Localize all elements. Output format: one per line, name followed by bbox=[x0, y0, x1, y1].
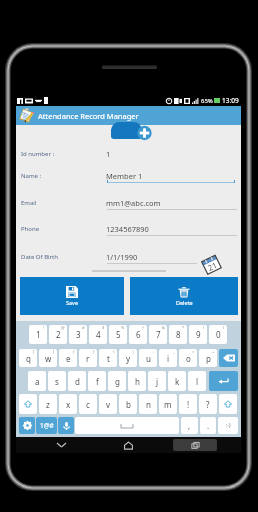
button[interactable]: Save bbox=[20, 277, 124, 315]
button[interactable]: w bbox=[39, 349, 57, 367]
button[interactable]: Backspace bbox=[219, 349, 238, 367]
staticText: . bbox=[207, 420, 210, 431]
button[interactable]: d bbox=[68, 371, 86, 391]
staticText: g bbox=[115, 376, 120, 387]
button[interactable]: q bbox=[19, 349, 37, 367]
button[interactable]: m bbox=[159, 394, 177, 414]
staticText: Name : bbox=[21, 172, 42, 180]
button[interactable]: 3 bbox=[69, 325, 87, 344]
staticText: 3 bbox=[76, 329, 81, 340]
staticText: q bbox=[26, 353, 31, 364]
staticText: z bbox=[46, 399, 50, 410]
staticText: r bbox=[86, 353, 90, 364]
button[interactable]: 6 bbox=[129, 325, 147, 344]
staticText: 8 bbox=[176, 329, 181, 340]
button[interactable]: , bbox=[181, 417, 198, 434]
staticText: Member 1 bbox=[106, 171, 143, 181]
staticText: y bbox=[126, 353, 131, 364]
staticText: m bbox=[164, 399, 172, 410]
button[interactable]: s bbox=[48, 371, 66, 391]
button[interactable]: Home bbox=[107, 437, 149, 453]
staticText: Attendance Record Manager bbox=[38, 111, 139, 121]
staticText: 65% bbox=[201, 97, 213, 105]
button[interactable]: k bbox=[168, 371, 186, 391]
button[interactable]: Voice input bbox=[58, 417, 74, 434]
button[interactable]: 0 bbox=[209, 325, 227, 344]
button[interactable]: u bbox=[139, 349, 157, 367]
staticText: u bbox=[146, 353, 151, 364]
button[interactable]: 5 bbox=[109, 325, 127, 344]
staticText: @ bbox=[61, 325, 65, 330]
staticText: } bbox=[93, 349, 95, 354]
staticText: 6 bbox=[136, 329, 141, 340]
button[interactable]: h bbox=[128, 371, 146, 391]
button[interactable]: c bbox=[79, 394, 97, 414]
button[interactable]: Back bbox=[40, 437, 82, 453]
button[interactable]: . bbox=[200, 417, 216, 434]
staticText: ^ bbox=[142, 325, 145, 330]
button[interactable]: t bbox=[99, 349, 117, 367]
staticText: e bbox=[66, 353, 71, 364]
button[interactable]: 9 bbox=[189, 325, 207, 344]
button[interactable]: v bbox=[99, 394, 117, 414]
staticText: s bbox=[55, 376, 59, 387]
staticText: 5 bbox=[116, 329, 121, 340]
staticText: a bbox=[35, 376, 40, 387]
staticText: i bbox=[167, 353, 170, 364]
button[interactable]: p bbox=[199, 349, 217, 367]
staticText: & bbox=[162, 325, 165, 330]
button[interactable]: 7 bbox=[149, 325, 167, 344]
button[interactable]: l bbox=[188, 371, 206, 391]
button[interactable]: Enter bbox=[209, 371, 238, 391]
button[interactable]: j bbox=[148, 371, 166, 391]
button[interactable]: Recents bbox=[173, 439, 217, 451]
staticText: ( bbox=[203, 325, 205, 330]
button[interactable]: 2 bbox=[49, 325, 67, 344]
staticText: ? bbox=[206, 399, 210, 410]
button[interactable]: Shift bbox=[219, 394, 237, 414]
button[interactable] bbox=[75, 417, 179, 434]
button[interactable]: Symbols bbox=[36, 417, 57, 434]
button[interactable]: ? bbox=[199, 394, 217, 414]
staticText: v bbox=[106, 399, 111, 410]
staticText: Delete bbox=[176, 299, 193, 306]
button[interactable]: 8 bbox=[169, 325, 187, 344]
button[interactable]: e bbox=[59, 349, 77, 367]
button[interactable]: x bbox=[59, 394, 77, 414]
button[interactable]: n bbox=[139, 394, 157, 414]
button[interactable]: Settings bbox=[19, 417, 35, 434]
button[interactable]: :-) bbox=[218, 417, 238, 434]
staticText: ] bbox=[53, 349, 55, 354]
staticText: l bbox=[196, 376, 199, 387]
staticText: 0 bbox=[216, 329, 221, 340]
button[interactable]: Delete bbox=[130, 277, 238, 315]
button[interactable]: y bbox=[119, 349, 137, 367]
staticText: Id number : bbox=[21, 150, 55, 158]
staticText: # bbox=[82, 325, 85, 330]
button[interactable]: o bbox=[179, 349, 197, 367]
staticText: - bbox=[153, 349, 155, 354]
button[interactable]: f bbox=[88, 371, 106, 391]
staticText: [ bbox=[33, 349, 35, 354]
button[interactable]: 1 bbox=[29, 325, 47, 344]
button[interactable]: ! bbox=[179, 394, 197, 414]
staticText: o bbox=[186, 353, 191, 364]
staticText: 7 bbox=[156, 329, 161, 340]
staticText: f bbox=[96, 376, 99, 387]
staticText: + bbox=[212, 349, 215, 354]
button[interactable]: r bbox=[79, 349, 97, 367]
button[interactable]: i bbox=[159, 349, 177, 367]
button[interactable]: 4 bbox=[89, 325, 107, 344]
button[interactable]: z bbox=[39, 394, 57, 414]
button[interactable]: a bbox=[28, 371, 46, 391]
staticText: \ bbox=[113, 349, 115, 354]
staticText: { bbox=[73, 349, 75, 354]
staticText: , bbox=[188, 420, 191, 431]
staticText: ! bbox=[43, 325, 45, 330]
staticText: w bbox=[45, 353, 52, 364]
button[interactable]: b bbox=[119, 394, 137, 414]
staticText: 4 bbox=[96, 329, 101, 340]
button[interactable]: Shift bbox=[19, 394, 37, 414]
button[interactable]: g bbox=[108, 371, 126, 391]
staticText: | bbox=[132, 349, 135, 354]
